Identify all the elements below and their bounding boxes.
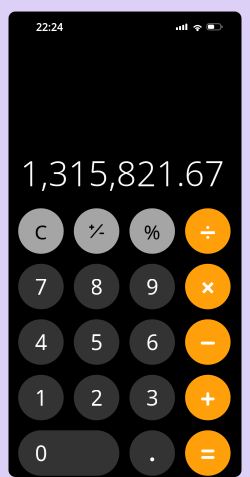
button[interactable]: 0 — [18, 430, 119, 476]
staticText: 9 — [146, 272, 158, 301]
button[interactable]: 9 — [129, 264, 175, 309]
staticText: 2 — [91, 383, 103, 412]
button[interactable]: 4 — [18, 319, 64, 365]
button[interactable]: 7 — [18, 264, 64, 309]
staticText: 7 — [35, 272, 47, 301]
button[interactable]: 5 — [74, 319, 119, 365]
staticText: % — [144, 218, 161, 245]
button[interactable]: Plus minus — [74, 208, 119, 254]
button[interactable]: 1 — [18, 375, 64, 420]
staticText: 6 — [146, 328, 158, 356]
staticText: 1 — [35, 383, 47, 412]
button[interactable]: Divide — [185, 208, 231, 254]
staticText: 3 — [146, 383, 158, 412]
button[interactable]: % — [129, 208, 175, 254]
button[interactable]: Equals — [185, 430, 231, 476]
staticText: 0 — [35, 439, 47, 467]
staticText: C — [34, 218, 47, 245]
button[interactable]: Subtract — [185, 319, 231, 365]
staticText: 1,315,821.67 — [20, 150, 224, 196]
button[interactable]: 2 — [74, 375, 119, 420]
button[interactable]: 3 — [129, 375, 175, 420]
staticText: 4 — [35, 328, 47, 356]
button[interactable]: C — [18, 208, 64, 254]
button[interactable]: Add — [185, 375, 231, 420]
button[interactable]: 6 — [129, 319, 175, 365]
button[interactable]: 8 — [74, 264, 119, 309]
button[interactable]: Multiply — [185, 264, 231, 309]
staticText: 8 — [91, 272, 103, 301]
button[interactable]: Decimal point — [129, 430, 175, 476]
staticText: 22:24 — [36, 20, 63, 34]
staticText: 5 — [91, 328, 103, 356]
